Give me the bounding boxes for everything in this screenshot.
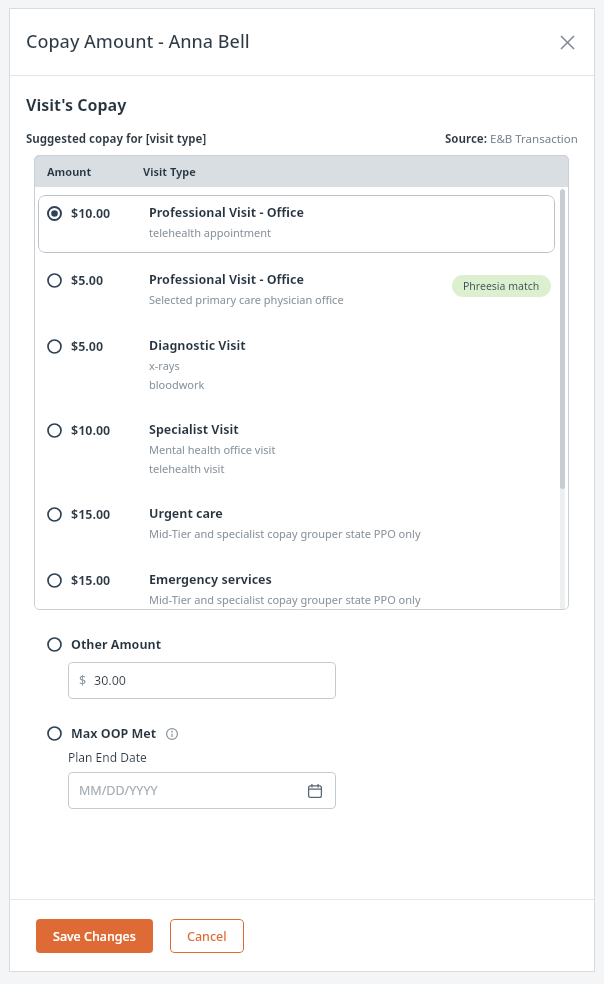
button[interactable]: Close xyxy=(549,24,585,60)
staticText: Source: xyxy=(445,131,490,147)
staticText: Copay Amount - Anna Bell xyxy=(26,29,250,54)
staticText: $ xyxy=(79,672,87,689)
button[interactable]: $5.00 xyxy=(38,329,555,413)
button[interactable]: $10.00 xyxy=(38,195,555,253)
staticText: Emergency services xyxy=(149,571,272,588)
button[interactable]: $10.00 xyxy=(38,413,555,497)
staticText: Specialist Visit xyxy=(149,421,239,438)
staticText: $15.00 xyxy=(71,506,149,523)
other: More information xyxy=(164,726,180,742)
staticText: Amount xyxy=(47,164,143,179)
button[interactable]: Max OOP Met xyxy=(47,725,180,742)
staticText: Phreesia match xyxy=(463,279,540,293)
button[interactable]: $15.00 xyxy=(38,497,555,563)
staticText: x-rays xyxy=(149,358,180,373)
staticText: Visit's Copay xyxy=(26,94,127,116)
staticText: Professional Visit - Office xyxy=(149,271,304,288)
staticText: Diagnostic Visit xyxy=(149,337,246,354)
staticText: $5.00 xyxy=(71,338,149,355)
button[interactable]: $ xyxy=(68,662,336,699)
staticText: $10.00 xyxy=(71,422,149,439)
button[interactable]: Other Amount xyxy=(47,636,162,653)
staticText: Plan End Date xyxy=(68,749,147,765)
staticText: 30.00 xyxy=(94,672,126,689)
button[interactable]: Plan End Date xyxy=(68,772,336,809)
staticText: Max OOP Met xyxy=(71,725,157,742)
staticText: Mid-Tier and specialist copay grouper st… xyxy=(149,526,421,541)
staticText: Urgent care xyxy=(149,505,223,522)
staticText: $10.00 xyxy=(71,205,149,222)
button[interactable]: Save Changes xyxy=(36,919,153,953)
staticText: $15.00 xyxy=(71,572,149,589)
staticText: Cancel xyxy=(187,928,227,945)
staticText: telehealth visit xyxy=(149,461,225,476)
button[interactable]: $5.00 xyxy=(38,263,555,329)
staticText: Suggested copay for [visit type] xyxy=(26,131,207,147)
staticText: Selected primary care physician office xyxy=(149,292,344,307)
staticText: E&B Transaction xyxy=(490,131,578,147)
staticText: $5.00 xyxy=(71,272,149,289)
staticText: telehealth appointment xyxy=(149,225,272,240)
staticText: bloodwork xyxy=(149,377,205,392)
staticText: Mid-Tier and specialist copay grouper st… xyxy=(149,592,421,607)
staticText: MM/DD/YYYY xyxy=(79,782,158,799)
staticText: Other Amount xyxy=(71,636,162,653)
staticText: Visit Type xyxy=(143,164,196,179)
staticText: Professional Visit - Office xyxy=(149,204,304,221)
staticText: Save Changes xyxy=(53,928,136,945)
button[interactable]: Cancel xyxy=(170,919,244,953)
button[interactable]: $15.00 xyxy=(38,563,555,610)
staticText: Mental health office visit xyxy=(149,442,276,457)
